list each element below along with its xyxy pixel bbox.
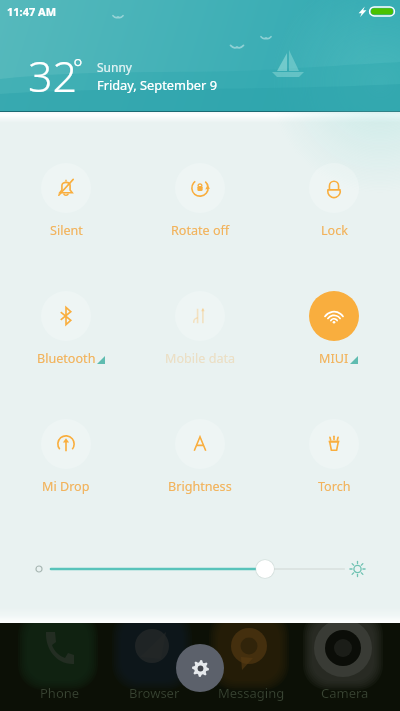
staticText: 11:47 AM [7,4,57,19]
staticText: Lock [321,222,348,238]
staticText: Rotate off [171,222,230,238]
staticText: Camera [321,684,369,702]
button[interactable] [278,163,390,241]
button[interactable]: Camera [295,684,395,702]
button[interactable]: Browser [104,684,204,702]
staticText: Brightness [168,478,232,494]
button[interactable] [10,291,122,369]
staticText: 32 [28,46,78,105]
staticText: Phone [40,684,80,702]
button[interactable] [278,291,390,369]
staticText: Browser [129,684,180,702]
staticText: Sunny [97,59,132,75]
button[interactable] [144,419,256,497]
staticText: ° [73,51,83,82]
button[interactable] [144,163,256,241]
button[interactable]: Brightness slider [20,552,380,586]
staticText: MIUI [319,350,349,366]
button[interactable] [10,163,122,241]
staticText: Mi Drop [42,478,90,494]
staticText: Messaging [218,684,285,702]
staticText: Friday, September 9 [97,76,217,93]
staticText: Silent [50,222,83,238]
staticText: Bluetooth [37,350,96,366]
staticText: Torch [318,478,351,494]
button[interactable]: Phone [10,684,110,702]
button[interactable]: Messaging [201,684,301,702]
button[interactable] [144,291,256,369]
button[interactable] [278,419,390,497]
button[interactable]: Settings [176,644,224,692]
button[interactable] [10,419,122,497]
staticText: Mobile data [165,350,236,366]
